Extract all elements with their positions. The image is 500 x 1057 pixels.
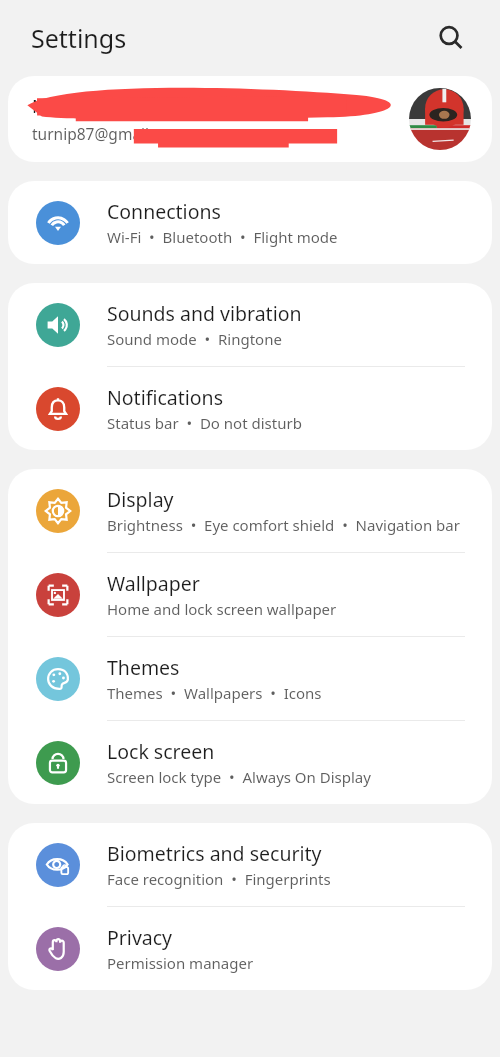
staticText: turnip87@gmail.com	[32, 123, 185, 144]
staticText: Status bar • Do not disturb	[107, 413, 302, 433]
button[interactable]: Profile picture	[409, 88, 471, 150]
staticText: Permission manager	[107, 953, 254, 973]
staticText: Notifications	[107, 384, 223, 411]
staticText: Display	[107, 486, 174, 513]
button[interactable]: Sounds and vibration	[8, 283, 492, 366]
button[interactable]: Connections	[8, 181, 492, 264]
staticText: Name Surname	[32, 94, 165, 119]
button[interactable]: Themes	[8, 637, 492, 720]
button[interactable]: Wallpaper	[8, 553, 492, 636]
button[interactable]: Display	[8, 469, 492, 552]
staticText: Wallpaper	[107, 570, 200, 597]
button[interactable]: Notifications	[8, 367, 492, 450]
staticText: Biometrics and security	[107, 840, 322, 867]
button[interactable]: Name Surname	[8, 76, 492, 162]
staticText: Lock screen	[107, 738, 215, 765]
staticText: Themes • Wallpapers • Icons	[107, 683, 322, 703]
staticText: Settings	[31, 21, 127, 55]
button[interactable]: Lock screen	[8, 721, 492, 804]
staticText: Privacy	[107, 924, 173, 951]
button[interactable]: Privacy	[8, 907, 492, 990]
staticText: Face recognition • Fingerprints	[107, 869, 331, 889]
staticText: Sound mode • Ringtone	[107, 329, 282, 349]
staticText: Screen lock type • Always On Display	[107, 767, 371, 787]
button[interactable]: Biometrics and security	[8, 823, 492, 906]
staticText: Wi-Fi • Bluetooth • Flight mode	[107, 227, 338, 247]
button[interactable]: Search	[428, 15, 474, 61]
staticText: Themes	[107, 654, 180, 681]
staticText: Home and lock screen wallpaper	[107, 599, 337, 619]
staticText: Sounds and vibration	[107, 300, 302, 327]
staticText: Brightness • Eye comfort shield • Naviga…	[107, 515, 460, 535]
staticText: Connections	[107, 198, 221, 225]
